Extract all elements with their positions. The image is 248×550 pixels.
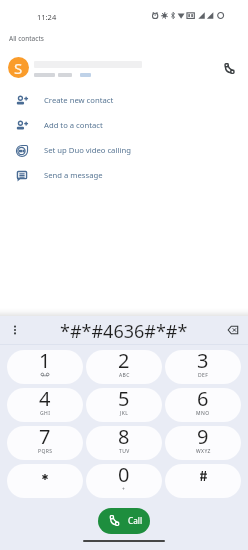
button[interactable]: 0 xyxy=(86,464,162,498)
button[interactable]: More options xyxy=(5,320,25,340)
staticText: S xyxy=(14,58,23,78)
staticText: DEF xyxy=(198,372,209,379)
button[interactable]: 5 xyxy=(86,388,162,422)
staticText: 6 xyxy=(197,388,209,412)
staticText: Set up Duo video calling xyxy=(44,145,131,155)
staticText: 8 xyxy=(118,426,130,450)
staticText: GHI xyxy=(40,410,51,417)
button[interactable]: 7 xyxy=(7,426,83,460)
staticText: 7 xyxy=(39,426,51,450)
staticText: WXYZ xyxy=(196,448,211,455)
button[interactable]: 3 xyxy=(165,350,241,384)
button[interactable]: 6 xyxy=(165,388,241,422)
staticText: Add to a contact xyxy=(44,120,103,130)
staticText: 5 xyxy=(118,388,130,412)
button[interactable] xyxy=(7,464,83,498)
staticText: + xyxy=(122,486,126,493)
staticText: MNO xyxy=(196,410,210,417)
staticText: 11:24 xyxy=(37,12,57,22)
button[interactable]: 9 xyxy=(165,426,241,460)
staticText: All contacts xyxy=(9,34,44,43)
button[interactable]: 4 xyxy=(7,388,83,422)
button[interactable]: 2 xyxy=(86,350,162,384)
button[interactable]: 8 xyxy=(86,426,162,460)
button[interactable]: S xyxy=(0,50,248,86)
staticText: Create new contact xyxy=(44,95,114,105)
button[interactable]: Create new contact xyxy=(0,88,248,112)
button[interactable] xyxy=(165,464,241,498)
button[interactable]: Call xyxy=(98,508,150,534)
staticText: PQRS xyxy=(38,448,53,455)
staticText: JKL xyxy=(120,410,129,417)
staticText: ABC xyxy=(119,372,130,379)
button[interactable]: Set up Duo video calling xyxy=(0,138,248,162)
staticText: Send a message xyxy=(44,170,103,180)
staticText: 2 xyxy=(118,350,130,374)
staticText: Call xyxy=(128,515,142,526)
button[interactable]: Call contact xyxy=(219,58,239,78)
staticText: TUV xyxy=(119,448,130,455)
staticText: 1 xyxy=(39,350,51,374)
button[interactable]: 1 xyxy=(7,350,83,384)
staticText: *#*#4636#*#* xyxy=(60,319,188,344)
staticText: 4 xyxy=(39,388,51,412)
button[interactable]: Send a message xyxy=(0,163,248,187)
staticText: 9 xyxy=(197,426,209,450)
button[interactable]: Backspace xyxy=(223,320,243,340)
button[interactable]: Add to a contact xyxy=(0,113,248,137)
staticText: 3 xyxy=(197,350,209,374)
staticText: 0 xyxy=(118,464,130,488)
